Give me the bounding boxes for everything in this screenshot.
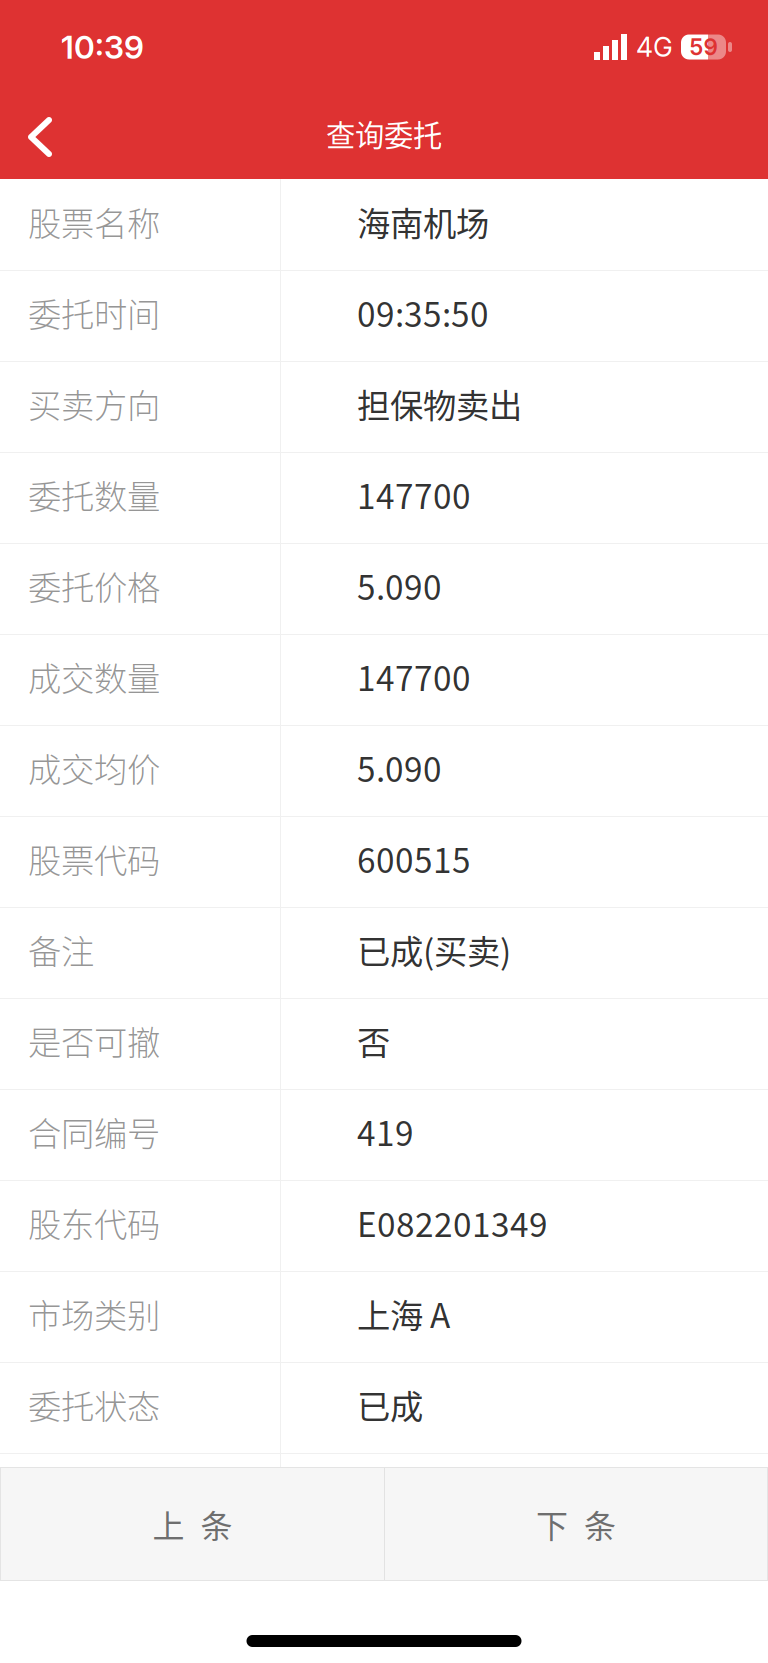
staticText: 担保物卖出 — [357, 379, 522, 428]
staticText: 是否可撤 — [28, 1016, 160, 1065]
staticText: 海南机场 — [357, 197, 489, 246]
staticText: 下 条 — [536, 1501, 616, 1547]
staticText: 委托状态 — [28, 1380, 160, 1429]
staticText: 59 — [689, 33, 717, 61]
staticText: 股东代码 — [28, 1198, 160, 1247]
staticText: 股票代码 — [28, 834, 160, 883]
staticText: 09:35:50 — [357, 288, 489, 337]
staticText: 5.090 — [357, 561, 442, 610]
staticText: 成交均价 — [28, 743, 160, 792]
button[interactable]: Back — [0, 88, 80, 179]
staticText: 市场类别 — [28, 1289, 160, 1338]
staticText: 委托数量 — [28, 470, 160, 519]
staticText: 419 — [357, 1107, 414, 1156]
staticText: 查询委托 — [326, 112, 442, 155]
staticText: 已成(买卖) — [357, 925, 511, 974]
staticText: 4G — [636, 31, 673, 63]
staticText: 否 — [357, 1016, 390, 1065]
staticText: 买卖方向 — [28, 379, 160, 428]
staticText: E082201349 — [357, 1198, 548, 1247]
staticText: 600515 — [357, 834, 471, 883]
staticText: 委托价格 — [28, 561, 160, 610]
staticText: 上海 A — [357, 1289, 450, 1338]
staticText: 委托时间 — [28, 288, 160, 337]
staticText: 5.090 — [357, 743, 442, 792]
button[interactable]: 下 条 — [385, 1468, 767, 1580]
staticText: 已成 — [357, 1380, 423, 1429]
staticText: 成交数量 — [28, 652, 160, 701]
button[interactable]: 上 条 — [1, 1468, 384, 1580]
staticText: 备注 — [28, 925, 94, 974]
staticText: 147700 — [357, 470, 471, 519]
staticText: 10:39 — [61, 28, 144, 66]
staticText: 147700 — [357, 652, 471, 701]
staticText: 上 条 — [152, 1501, 232, 1547]
staticText: 合同编号 — [28, 1107, 160, 1156]
staticText: 股票名称 — [28, 197, 160, 246]
